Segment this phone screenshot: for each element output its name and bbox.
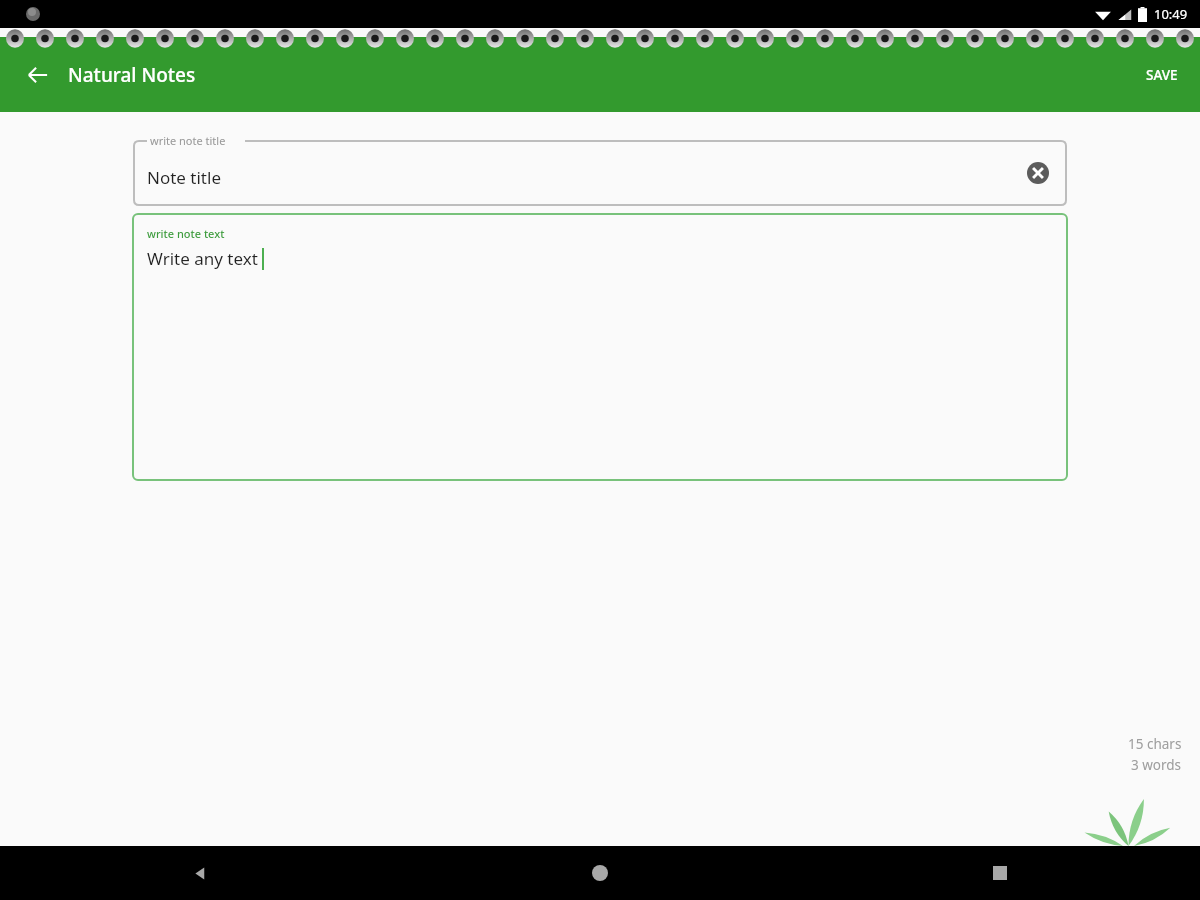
button[interactable]: write note title [133, 140, 1067, 206]
button[interactable]: Back [0, 846, 400, 900]
staticText: 15 chars [1128, 735, 1182, 753]
button[interactable]: Recent apps [800, 846, 1200, 900]
staticText: write note title [150, 133, 226, 148]
staticText: 3 words [1131, 756, 1182, 774]
staticText: Write any text [147, 247, 258, 270]
button[interactable]: Home [400, 846, 800, 900]
button[interactable]: SAVE [1134, 56, 1190, 94]
staticText: Natural Notes [68, 62, 196, 88]
button[interactable]: write note text [133, 214, 1067, 480]
button[interactable]: Back [14, 51, 62, 99]
button[interactable]: Clear title [1021, 156, 1055, 190]
staticText: SAVE [1146, 66, 1178, 84]
staticText: Note title [147, 166, 221, 189]
staticText: 10:49 [1154, 5, 1188, 23]
staticText: write note text [147, 226, 225, 241]
